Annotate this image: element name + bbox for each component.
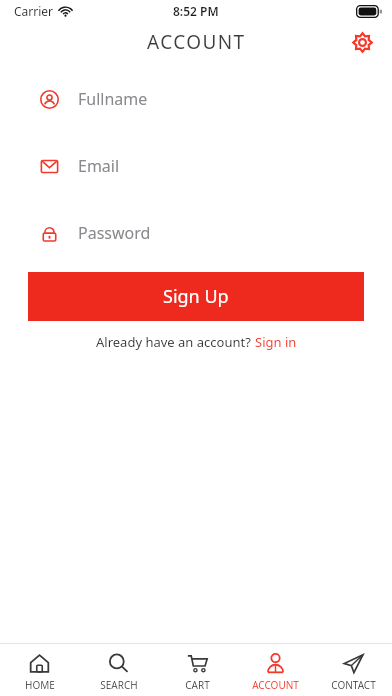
staticText: HOME <box>25 678 55 692</box>
staticText: CART <box>185 678 210 692</box>
button[interactable]: Sign Up <box>28 272 364 321</box>
staticText: Carrier <box>14 3 54 19</box>
button[interactable]: Email <box>0 151 392 181</box>
staticText: Sign in <box>255 333 297 351</box>
button[interactable]: Fullname <box>0 84 392 114</box>
staticText: ACCOUNT <box>147 29 246 55</box>
button[interactable]: ACCOUNT <box>236 649 314 692</box>
button[interactable]: CONTACT <box>314 649 392 692</box>
staticText: Sign Up <box>163 284 229 309</box>
button[interactable]: Settings <box>344 24 380 60</box>
staticText: SEARCH <box>100 678 138 692</box>
staticText: 8:52 PM <box>173 3 219 19</box>
button[interactable]: Sign in <box>255 333 297 351</box>
staticText: Email <box>78 155 120 177</box>
staticText: Already have an account? <box>96 333 255 351</box>
button[interactable]: Password <box>0 218 392 248</box>
staticText: Fullname <box>78 88 148 110</box>
staticText: Password <box>78 222 151 244</box>
button[interactable]: HOME <box>0 649 79 692</box>
button[interactable]: CART <box>158 649 236 692</box>
staticText: ACCOUNT <box>252 678 299 692</box>
staticText: CONTACT <box>331 678 376 692</box>
button[interactable]: SEARCH <box>79 649 158 692</box>
